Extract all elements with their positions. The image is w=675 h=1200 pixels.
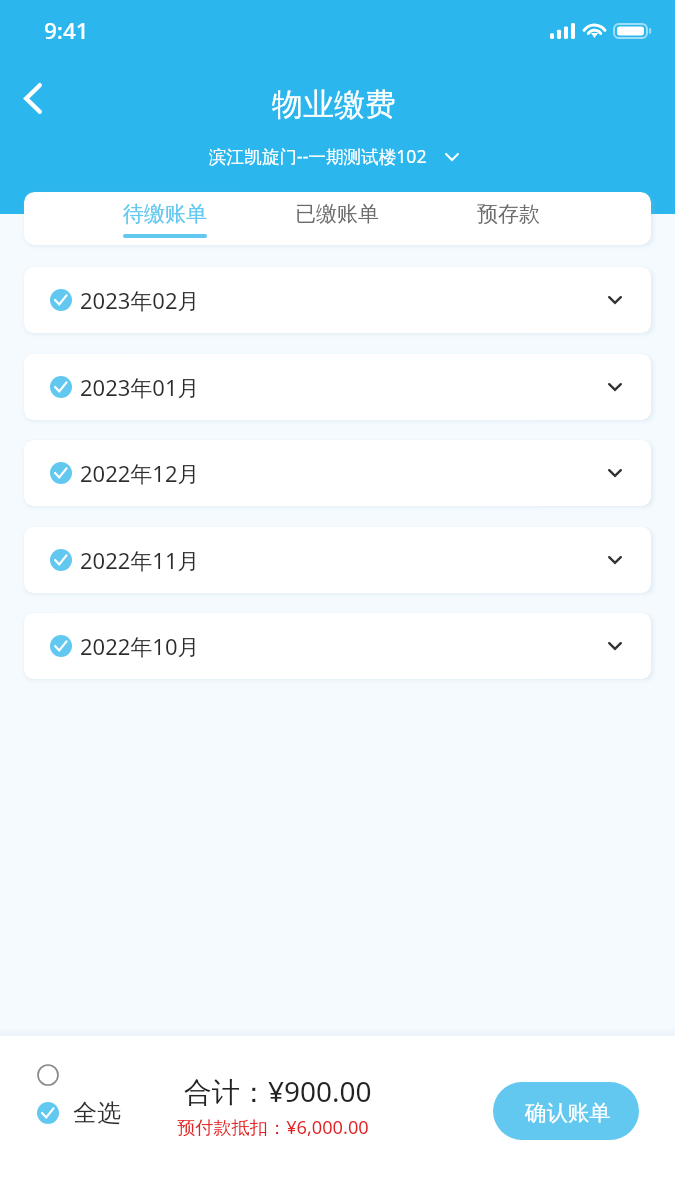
button[interactable]: Back	[5, 70, 61, 126]
staticText: 物业缴费	[272, 85, 396, 124]
staticText: 全选	[73, 1098, 121, 1128]
button[interactable]: 滨江凯旋门--一期测试楼102	[209, 144, 459, 168]
staticText: 2022年12月	[80, 458, 200, 488]
staticText: 2023年01月	[80, 372, 200, 402]
button[interactable]: 已缴账单	[277, 192, 397, 245]
staticText: 待缴账单	[123, 201, 207, 227]
button[interactable]: 确认账单	[493, 1082, 639, 1140]
button[interactable]: 预存款	[448, 192, 568, 245]
staticText: 合计：¥900.00	[184, 1072, 372, 1110]
staticText: 2022年11月	[80, 545, 200, 575]
staticText: 预付款抵扣：¥6,000.00	[177, 1115, 369, 1140]
staticText: 2022年10月	[80, 631, 200, 661]
button[interactable]: 2023年02月	[24, 267, 651, 333]
button[interactable]: 2022年12月	[24, 440, 651, 506]
staticText: 已缴账单	[295, 201, 379, 227]
other: Select	[37, 1064, 59, 1086]
button[interactable]: 2022年10月	[24, 613, 651, 679]
button[interactable]: 2023年01月	[24, 354, 651, 420]
button[interactable]: 2022年11月	[24, 527, 651, 593]
button[interactable]: Select	[30, 1047, 130, 1141]
staticText: 2023年02月	[80, 285, 200, 315]
staticText: 9:41	[44, 15, 89, 46]
staticText: 确认账单	[525, 1099, 611, 1126]
button[interactable]: 待缴账单	[105, 192, 225, 245]
staticText: 滨江凯旋门--一期测试楼102	[209, 144, 427, 168]
staticText: 预存款	[477, 201, 540, 227]
